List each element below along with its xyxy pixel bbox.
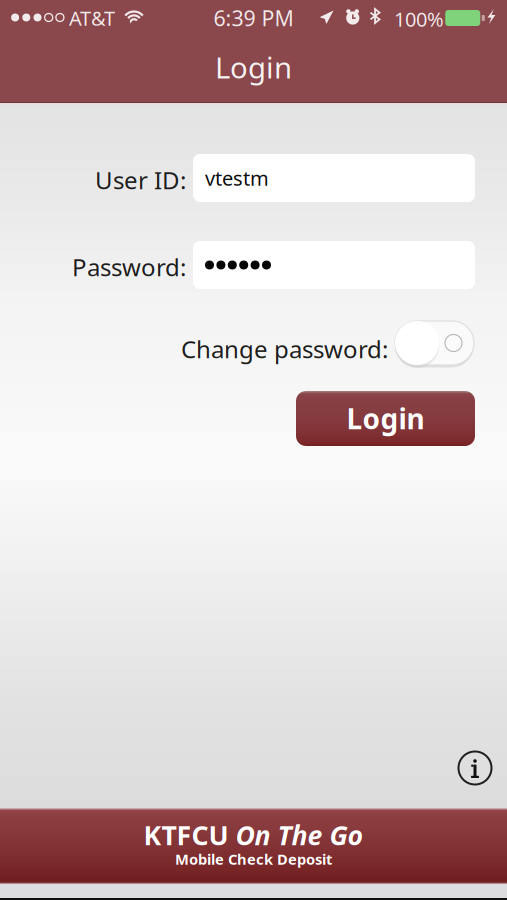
- staticText: Login: [346, 400, 424, 437]
- button[interactable]: Login: [296, 391, 475, 446]
- staticText: Login: [215, 47, 292, 86]
- staticText: Mobile Check Deposit: [175, 849, 332, 869]
- staticText: Password:: [72, 251, 186, 283]
- staticText: 100%: [394, 6, 444, 32]
- staticText: User ID:: [95, 164, 186, 196]
- staticText: AT&T: [69, 5, 115, 31]
- button[interactable]: Information: [453, 746, 497, 790]
- staticText: KTFCU On The Go: [143, 817, 363, 853]
- staticText: Change password:: [181, 333, 388, 365]
- staticText: 6:39 PM: [213, 4, 293, 32]
- staticText: vtestm: [205, 165, 269, 191]
- button[interactable]: [395, 321, 474, 365]
